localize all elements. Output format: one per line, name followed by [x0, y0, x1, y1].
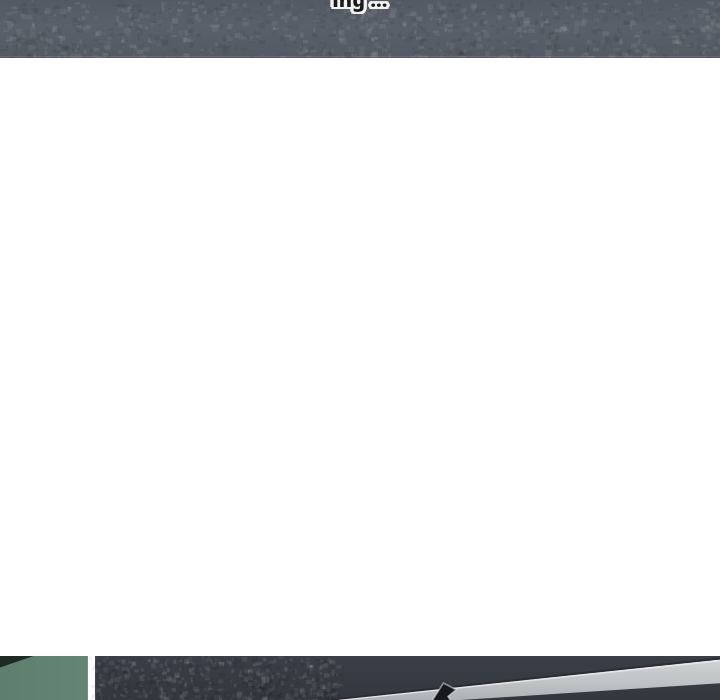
staticText: ing ... [335, 0, 391, 13]
staticText: ing ... [329, 0, 385, 13]
staticText: ing ... [332, 0, 388, 15]
button[interactable]: Green panel [0, 656, 88, 700]
staticText: ing ... [332, 0, 388, 13]
button[interactable]: Action [432, 656, 720, 700]
staticText: ing ... [334, 0, 390, 13]
staticText: ing ... [332, 0, 388, 11]
staticText: ing ... [330, 0, 386, 13]
staticText: ing ... [330, 0, 386, 11]
button[interactable]: ing ... [332, 0, 388, 13]
staticText: ing ... [330, 0, 386, 15]
staticText: ing ... [334, 0, 390, 11]
button[interactable]: Green panel [0, 656, 720, 700]
button[interactable]: ing ... [0, 0, 720, 58]
staticText: ing ... [334, 0, 390, 15]
